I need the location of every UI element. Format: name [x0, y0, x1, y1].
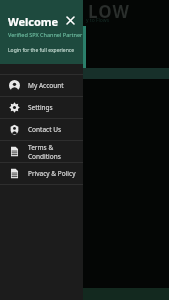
button[interactable]: Privacy & Policy [0, 163, 83, 184]
staticText: Settings [28, 103, 53, 112]
button[interactable]: Close [62, 12, 78, 28]
staticText: Contact Us [28, 125, 62, 134]
staticText: LOW [88, 0, 130, 22]
staticText: Login for the full experience [8, 47, 74, 54]
staticText: Welcome [8, 14, 59, 29]
button[interactable]: My Account [0, 75, 83, 96]
button[interactable]: Contact Us [0, 119, 83, 140]
staticText: Verified SPX Channel Partner [8, 31, 83, 38]
staticText: Privacy & Policy [28, 169, 76, 178]
button[interactable]: Settings [0, 97, 83, 118]
button[interactable]: Terms & Conditions [0, 141, 83, 162]
staticText: Terms & Conditions [28, 143, 83, 161]
staticText: My Account [28, 81, 64, 90]
staticText: y to Flows [86, 17, 110, 24]
